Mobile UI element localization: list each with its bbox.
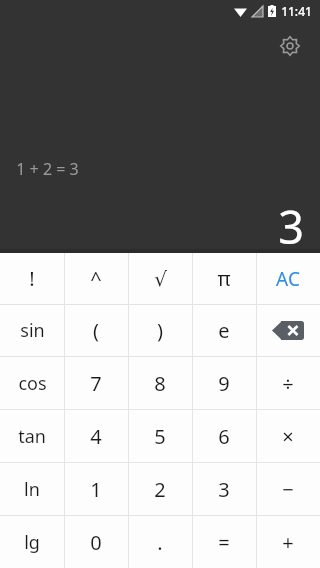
staticText: ln (24, 477, 40, 502)
staticText: 1 (90, 476, 102, 503)
staticText: ) (157, 317, 163, 344)
staticText: 4 (90, 423, 102, 450)
staticText: 8 (154, 370, 166, 397)
button[interactable]: lg (0, 516, 64, 568)
button[interactable]: ) (128, 305, 192, 356)
staticText: + (282, 529, 294, 556)
button[interactable]: Settings (274, 30, 306, 62)
button[interactable]: e (192, 305, 256, 356)
staticText: tan (18, 424, 46, 449)
staticText: e (218, 317, 230, 344)
button[interactable]: 7 (64, 357, 128, 409)
button[interactable]: + (256, 516, 320, 568)
staticText: π (217, 265, 231, 292)
button[interactable]: ! (0, 253, 64, 304)
button[interactable]: cos (0, 357, 64, 409)
staticText: 1 + 2 = 3 (16, 158, 79, 180)
button[interactable]: 6 (192, 410, 256, 462)
button[interactable]: ( (64, 305, 128, 356)
staticText: = (218, 529, 230, 556)
button[interactable]: ln (0, 463, 64, 515)
button[interactable]: π (192, 253, 256, 304)
button[interactable]: 4 (64, 410, 128, 462)
staticText: 9 (218, 370, 230, 397)
button[interactable]: − (256, 463, 320, 515)
button[interactable]: . (128, 516, 192, 568)
staticText: ^ (90, 265, 102, 292)
button[interactable]: × (256, 410, 320, 462)
staticText: ( (93, 317, 99, 344)
button[interactable]: tan (0, 410, 64, 462)
staticText: 7 (90, 370, 102, 397)
button[interactable]: 1 (64, 463, 128, 515)
staticText: ÷ (282, 370, 294, 397)
button[interactable]: 8 (128, 357, 192, 409)
staticText: 0 (90, 529, 102, 556)
button[interactable]: AC (256, 253, 320, 304)
button[interactable]: √ (128, 253, 192, 304)
staticText: 11:41 (281, 3, 312, 19)
staticText: × (282, 423, 294, 450)
staticText: cos (18, 371, 47, 396)
button[interactable]: ÷ (256, 357, 320, 409)
button[interactable]: Backspace (256, 305, 320, 356)
button[interactable]: 9 (192, 357, 256, 409)
button[interactable]: sin (0, 305, 64, 356)
staticText: 5 (154, 423, 166, 450)
button[interactable]: = (192, 516, 256, 568)
staticText: 3 (278, 196, 304, 253)
button[interactable]: 5 (128, 410, 192, 462)
staticText: . (157, 529, 163, 556)
button[interactable]: 0 (64, 516, 128, 568)
button[interactable]: 2 (128, 463, 192, 515)
staticText: 3 (218, 476, 230, 503)
staticText: sin (20, 318, 45, 343)
staticText: ! (29, 265, 35, 292)
staticText: − (282, 476, 294, 503)
staticText: lg (24, 530, 40, 555)
staticText: AC (276, 266, 300, 292)
staticText: √ (154, 267, 167, 290)
button[interactable]: 3 (192, 463, 256, 515)
button[interactable]: ^ (64, 253, 128, 304)
staticText: 6 (218, 423, 230, 450)
staticText: 2 (154, 476, 166, 503)
